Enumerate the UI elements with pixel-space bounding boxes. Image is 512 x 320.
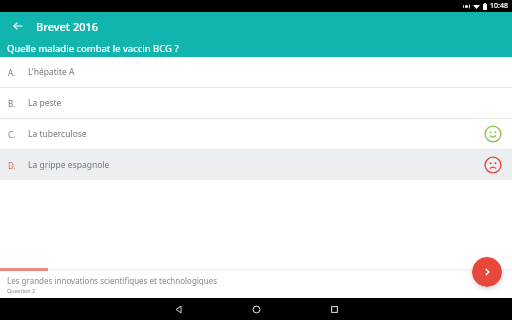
staticText: D. <box>8 160 16 171</box>
button[interactable]: Recent apps <box>295 298 373 320</box>
staticText: Question 2 <box>7 287 36 294</box>
button[interactable]: Back <box>139 298 217 320</box>
staticText: 10:48 <box>490 1 508 11</box>
staticText: Les grandes innovations scientifiques et… <box>7 275 218 286</box>
button[interactable]: D. <box>0 150 512 180</box>
staticText: C. <box>8 129 16 140</box>
staticText: Quelle maladie combat le vaccin BCG ? <box>7 42 179 55</box>
staticText: La tuberculose <box>28 128 87 140</box>
button[interactable]: B. <box>0 88 512 118</box>
button[interactable]: Home <box>217 298 295 320</box>
button[interactable]: Back <box>8 16 28 36</box>
staticText: Brevet 2016 <box>36 19 99 34</box>
button[interactable]: C. <box>0 119 512 149</box>
button[interactable]: Next question <box>472 257 502 287</box>
staticText: La grippe espagnole <box>28 159 110 171</box>
staticText: A. <box>8 67 16 78</box>
staticText: B. <box>8 98 16 109</box>
staticText: La peste <box>28 97 62 109</box>
staticText: L'hépatite A <box>28 66 75 78</box>
button[interactable]: A. <box>0 57 512 87</box>
